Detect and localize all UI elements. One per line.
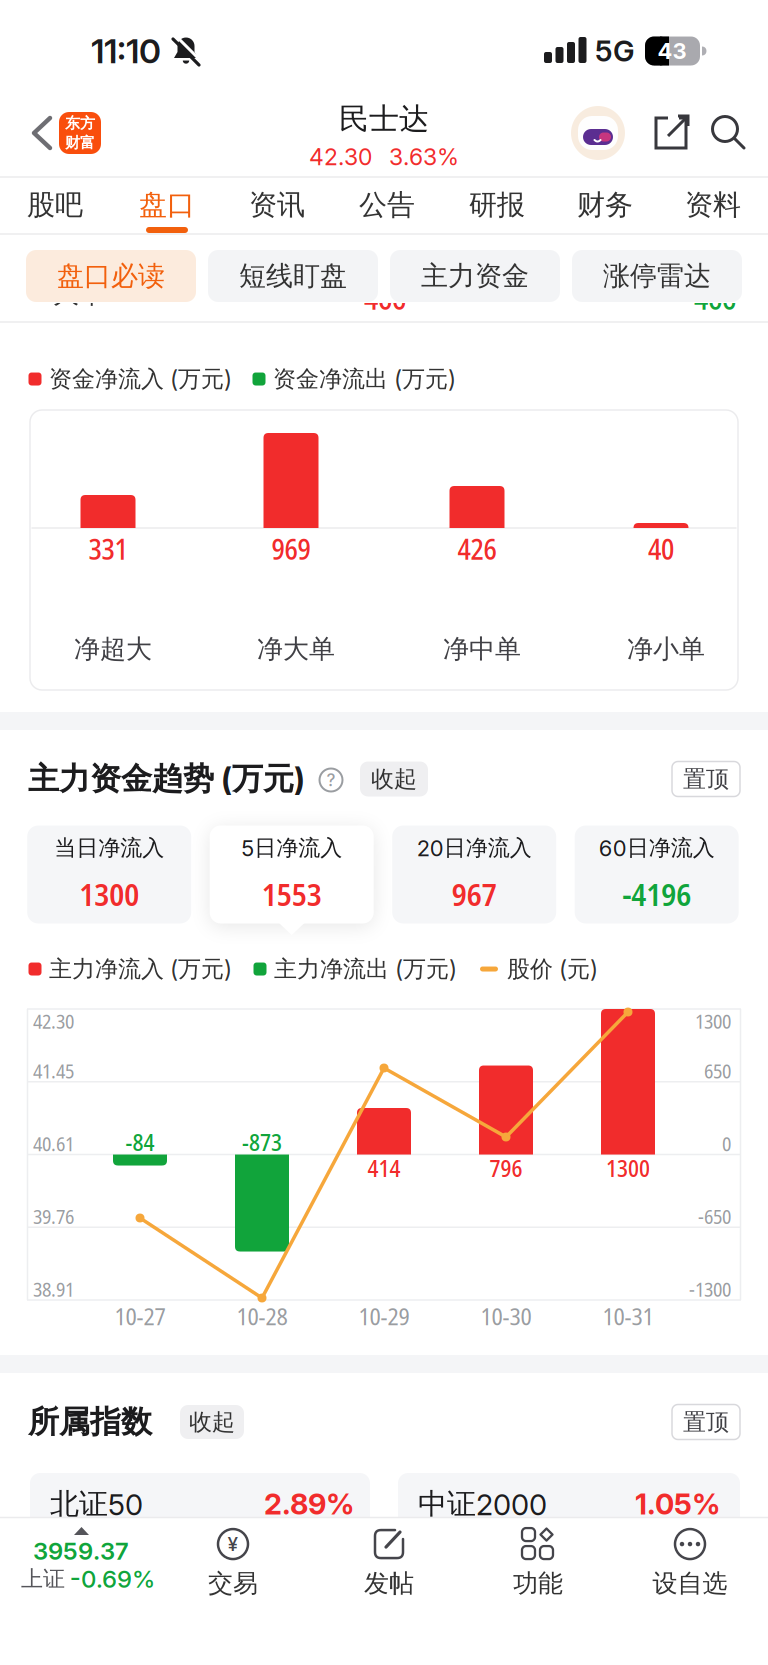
- staticText: 股吧: [27, 188, 83, 222]
- staticText: 0: [722, 1130, 731, 1157]
- staticText: 42.30: [309, 143, 372, 171]
- staticText: 466: [694, 278, 736, 318]
- staticText: 39.76: [33, 1203, 74, 1230]
- staticText: 资料: [685, 188, 741, 222]
- button[interactable]: Search: [707, 111, 751, 155]
- button[interactable]: 置顶: [672, 761, 740, 796]
- staticText: 11:10: [91, 31, 161, 71]
- staticText: 10-27: [114, 1300, 165, 1332]
- staticText: 2.89%: [264, 1487, 354, 1521]
- staticText: 主力资金趋势 (万元): [28, 760, 305, 798]
- staticText: -873: [242, 1127, 282, 1157]
- staticText: 3959.37: [33, 1537, 129, 1565]
- staticText: -0.69%: [70, 1565, 155, 1593]
- staticText: -4196: [622, 873, 691, 915]
- staticText: 43: [657, 38, 686, 64]
- staticText: 1.05%: [635, 1487, 720, 1521]
- button[interactable]: 研报: [447, 178, 547, 232]
- button[interactable]: ¥: [168, 1517, 298, 1609]
- staticText: 969: [271, 530, 310, 568]
- button[interactable]: Share: [649, 111, 693, 155]
- button[interactable]: 盘口必读: [26, 250, 196, 302]
- staticText: 收起: [371, 765, 417, 793]
- staticText: ¥: [227, 1533, 238, 1555]
- button[interactable]: 5日净流入: [210, 825, 374, 923]
- staticText: ?: [326, 770, 335, 790]
- staticText: 5日净流入: [241, 834, 342, 861]
- button[interactable]: 收起: [360, 761, 428, 796]
- button[interactable]: 资讯: [227, 178, 327, 232]
- staticText: 所属指数: [28, 1403, 152, 1441]
- button[interactable]: 功能: [473, 1517, 603, 1609]
- staticText: 股价 (元): [507, 955, 598, 983]
- button[interactable]: 收起: [180, 1405, 244, 1439]
- staticText: 38.91: [33, 1276, 74, 1302]
- button[interactable]: 助手: [571, 106, 625, 160]
- staticText: 331: [88, 530, 127, 568]
- staticText: 东方: [65, 114, 95, 132]
- staticText: 资金净流出 (万元): [273, 365, 456, 393]
- staticText: 10-30: [480, 1300, 531, 1332]
- button[interactable]: Back: [28, 113, 56, 153]
- button[interactable]: 北证50: [30, 1473, 370, 1545]
- staticText: 大单: [53, 278, 105, 310]
- staticText: 公告: [359, 188, 415, 222]
- staticText: 资讯: [249, 188, 305, 222]
- staticText: 财富: [65, 133, 95, 152]
- staticText: -84: [125, 1127, 154, 1157]
- button[interactable]: 主力资金: [390, 250, 560, 302]
- staticText: 功能: [513, 1568, 563, 1599]
- staticText: 10-31: [602, 1300, 653, 1332]
- button[interactable]: 资料: [663, 178, 763, 232]
- staticText: 中证2000: [418, 1486, 547, 1522]
- staticText: 涨停雷达: [603, 259, 711, 293]
- button[interactable]: 60日净流入: [575, 825, 739, 923]
- staticText: 设自选: [652, 1568, 727, 1599]
- staticText: 426: [457, 530, 496, 568]
- button[interactable]: 盘口: [117, 178, 217, 232]
- staticText: 3.63%: [389, 143, 459, 171]
- staticText: 40.61: [33, 1130, 74, 1157]
- button[interactable]: 20日净流入: [392, 825, 556, 923]
- staticText: 466: [364, 278, 406, 318]
- staticText: 盘口: [139, 188, 195, 222]
- staticText: 主力净流入 (万元): [49, 955, 232, 983]
- button[interactable]: 公告: [337, 178, 437, 232]
- button[interactable]: 财务: [555, 178, 655, 232]
- button[interactable]: 东方财富: [59, 112, 101, 154]
- staticText: 650: [704, 1057, 731, 1084]
- button[interactable]: 发帖: [324, 1517, 454, 1609]
- button[interactable]: 中证2000: [398, 1473, 740, 1545]
- staticText: -650: [698, 1203, 731, 1230]
- staticText: 净大单: [257, 633, 335, 665]
- button[interactable]: 短线盯盘: [208, 250, 378, 302]
- staticText: 财务: [577, 188, 633, 222]
- staticText: 42.30: [33, 1008, 74, 1034]
- staticText: 净超大: [74, 633, 152, 665]
- button[interactable]: 当日净流入: [27, 825, 191, 923]
- staticText: 1553: [262, 873, 322, 915]
- staticText: 1300: [695, 1008, 731, 1034]
- button[interactable]: 股吧: [5, 178, 105, 232]
- button[interactable]: 涨停雷达: [572, 250, 742, 302]
- staticText: 收起: [189, 1408, 235, 1436]
- button[interactable]: 说明: [319, 768, 342, 791]
- staticText: 置顶: [683, 1408, 729, 1436]
- button[interactable]: 3959.37: [0, 1517, 180, 1609]
- staticText: 主力资金: [421, 259, 529, 293]
- staticText: 发帖: [364, 1568, 414, 1599]
- staticText: 北证50: [50, 1486, 143, 1522]
- staticText: 净中单: [443, 633, 521, 665]
- staticText: -1300: [689, 1276, 731, 1302]
- button[interactable]: 设自选: [625, 1517, 755, 1609]
- staticText: 净小单: [627, 633, 705, 665]
- staticText: 967: [452, 873, 497, 915]
- staticText: 414: [367, 1153, 400, 1183]
- staticText: 10-29: [358, 1300, 409, 1332]
- button[interactable]: 置顶: [672, 1404, 740, 1439]
- staticText: 1300: [79, 873, 139, 915]
- staticText: 当日净流入: [54, 834, 164, 861]
- staticText: 5G: [595, 34, 635, 68]
- staticText: 796: [489, 1153, 522, 1183]
- staticText: 民士达: [339, 100, 429, 137]
